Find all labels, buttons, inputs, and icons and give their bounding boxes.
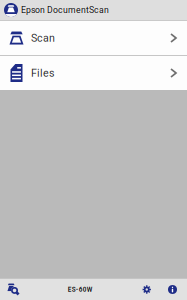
button[interactable]: Find scanner [0, 279, 19, 300]
staticText: Epson DocumentScan [21, 5, 109, 15]
button[interactable]: Scan [0, 21, 187, 55]
staticText: Files [31, 67, 55, 79]
staticText: ES-60W [68, 286, 93, 293]
button[interactable]: Files [0, 56, 187, 90]
button[interactable]: Settings [137, 280, 159, 299]
button[interactable]: Information [159, 280, 187, 299]
staticText: Scan [31, 32, 55, 44]
